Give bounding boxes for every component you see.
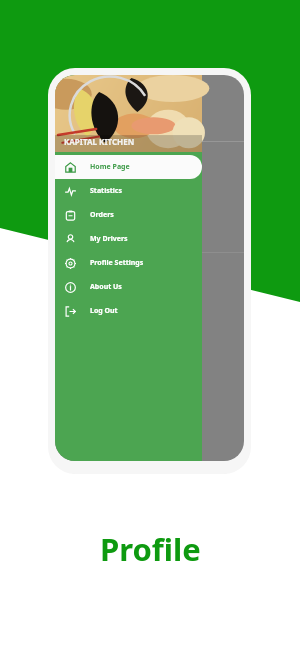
staticText: My Drivers [90, 234, 128, 244]
staticText: Log Out [90, 306, 118, 316]
staticText: Orders [90, 210, 114, 220]
button[interactable]: Log Out [55, 299, 202, 323]
button[interactable]: Orders [55, 203, 202, 227]
staticText: KAPITAL KITCHEN [64, 136, 135, 147]
button[interactable]: About Us [55, 275, 202, 299]
button[interactable]: Home Page [55, 155, 202, 179]
staticText: About Us [90, 282, 122, 292]
staticText: Profile [100, 528, 201, 570]
button[interactable]: Statistics [55, 179, 202, 203]
staticText: Profile Settings [90, 258, 144, 268]
staticText: Home Page [90, 162, 130, 172]
staticText: Statistics [90, 186, 122, 196]
button[interactable]: My Drivers [55, 227, 202, 251]
button[interactable]: Profile Settings [55, 251, 202, 275]
